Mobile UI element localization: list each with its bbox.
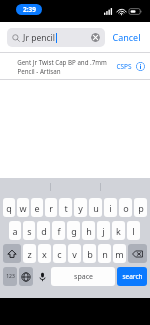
button[interactable]: search (117, 267, 147, 286)
staticText: f (57, 225, 61, 237)
button[interactable]: Backspace (128, 244, 147, 263)
button[interactable]: r (45, 198, 57, 217)
button[interactable]: u (89, 198, 102, 217)
button[interactable]: f (52, 221, 65, 240)
staticText: Jr pencil (23, 32, 55, 44)
staticText: v (72, 248, 77, 260)
staticText: p (138, 202, 144, 214)
staticText: x (42, 248, 47, 260)
staticText: q (6, 202, 12, 214)
button[interactable]: k (112, 221, 125, 240)
staticText: y (78, 202, 83, 214)
staticText: n (102, 248, 108, 260)
staticText: o (123, 202, 129, 214)
staticText: z (27, 248, 32, 260)
staticText: d (41, 225, 47, 237)
button[interactable]: e (31, 198, 43, 217)
button[interactable]: m (113, 244, 126, 263)
button[interactable]: h (82, 221, 95, 240)
staticText: l (132, 225, 135, 237)
button[interactable]: More info (136, 62, 145, 71)
staticText: 2:39 (23, 5, 36, 14)
button[interactable]: b (83, 244, 96, 263)
button[interactable]: p (134, 198, 147, 217)
staticText: k (116, 225, 121, 237)
button[interactable]: n (98, 244, 111, 263)
button[interactable]: v (68, 244, 81, 263)
staticText: a (12, 225, 18, 237)
button[interactable]: w (17, 198, 29, 217)
button[interactable]: s (23, 221, 35, 240)
staticText: e (34, 202, 40, 214)
button[interactable]: x (38, 244, 51, 263)
staticText: g (71, 225, 77, 237)
staticText: c (57, 248, 62, 260)
staticText: u (93, 202, 99, 214)
button[interactable]: o (119, 198, 132, 217)
staticText: w (19, 202, 27, 214)
button[interactable]: space (51, 267, 115, 286)
staticText: CSPS (116, 62, 132, 71)
button[interactable]: j (97, 221, 110, 240)
staticText: t (64, 202, 68, 214)
button[interactable]: y (74, 198, 87, 217)
staticText: 123 (6, 273, 15, 280)
button[interactable]: Clear text (91, 33, 100, 42)
staticText: search (122, 272, 143, 281)
button[interactable]: c (53, 244, 66, 263)
button[interactable]: l (127, 221, 140, 240)
button[interactable]: a (9, 221, 21, 240)
button[interactable]: t (59, 198, 72, 217)
button[interactable]: Cancel (110, 28, 143, 46)
staticText: space (74, 272, 93, 282)
button[interactable]: z (23, 244, 36, 263)
button[interactable]: q (3, 198, 15, 217)
staticText: Pencil - Artisan (17, 67, 61, 75)
staticText: m (115, 248, 124, 260)
staticText: j (102, 225, 105, 237)
staticText: r (49, 202, 53, 214)
button[interactable]: 123 (3, 267, 17, 286)
button[interactable]: Gent Jr Twist Cap BP and .7mm (0, 53, 150, 79)
staticText: h (86, 225, 92, 237)
staticText: s (27, 225, 32, 237)
button[interactable]: d (37, 221, 50, 240)
button[interactable]: Switch keyboard (19, 267, 33, 286)
staticText: Gent Jr Twist Cap BP and .7mm (17, 58, 107, 66)
button[interactable]: Dictate (35, 267, 49, 286)
button[interactable]: Jr pencil (7, 28, 105, 47)
staticText: Cancel (112, 31, 141, 43)
staticText: i (109, 202, 112, 214)
button[interactable]: i (104, 198, 117, 217)
button[interactable]: g (67, 221, 80, 240)
staticText: b (87, 248, 93, 260)
button[interactable]: Shift (3, 244, 21, 263)
